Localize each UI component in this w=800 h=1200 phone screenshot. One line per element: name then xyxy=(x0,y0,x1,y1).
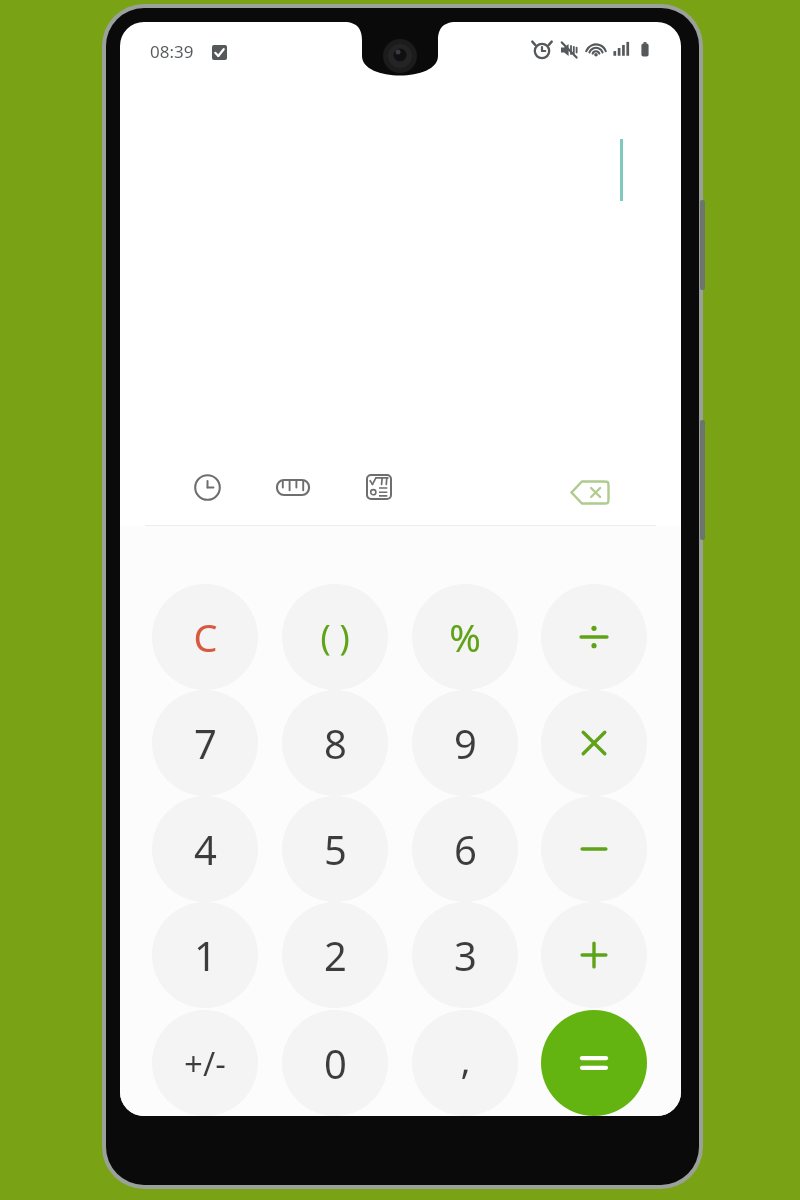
button[interactable]: 2 xyxy=(282,902,388,1008)
button[interactable]: 9 xyxy=(412,690,518,796)
staticText: C xyxy=(193,611,218,663)
button[interactable]: Scientific calculator xyxy=(354,462,404,512)
staticText: 1 xyxy=(194,928,217,982)
button[interactable]: 6 xyxy=(412,796,518,902)
staticText: 6 xyxy=(454,822,477,876)
staticText: 5 xyxy=(324,822,347,876)
button[interactable]: 0 xyxy=(282,1010,388,1116)
button[interactable]: 3 xyxy=(412,902,518,1008)
button[interactable]: % xyxy=(412,584,518,690)
staticText: 8 xyxy=(324,716,347,770)
button[interactable]: Divide xyxy=(541,584,647,690)
button[interactable]: , xyxy=(412,1010,518,1116)
button[interactable]: Add xyxy=(541,902,647,1008)
staticText: 4 xyxy=(194,822,217,876)
staticText: 3 xyxy=(454,928,477,982)
staticText: 0 xyxy=(324,1036,347,1090)
button[interactable]: 8 xyxy=(282,690,388,796)
button[interactable]: C xyxy=(152,584,258,690)
staticText: 9 xyxy=(454,716,477,770)
staticText: +/- xyxy=(184,1041,226,1086)
button[interactable]: History xyxy=(182,462,232,512)
button[interactable]: Equals xyxy=(541,1010,647,1116)
staticText: ( ) xyxy=(320,614,350,660)
staticText: 7 xyxy=(194,716,217,770)
button[interactable]: Multiply xyxy=(541,690,647,796)
button[interactable]: 7 xyxy=(152,690,258,796)
button[interactable]: Subtract xyxy=(541,796,647,902)
staticText: % xyxy=(449,611,481,663)
button[interactable]: 1 xyxy=(152,902,258,1008)
button[interactable]: ( ) xyxy=(282,584,388,690)
staticText: 08:39 xyxy=(150,40,194,63)
staticText: , xyxy=(460,1033,471,1085)
button[interactable]: Backspace xyxy=(560,462,620,522)
button[interactable]: Unit converter xyxy=(268,462,318,512)
staticText: 2 xyxy=(324,928,347,982)
button[interactable]: +/- xyxy=(152,1010,258,1116)
button[interactable]: 5 xyxy=(282,796,388,902)
button[interactable]: 4 xyxy=(152,796,258,902)
